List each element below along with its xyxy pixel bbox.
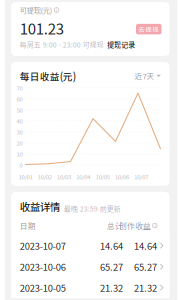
- staticText: 去提现: [138, 24, 159, 34]
- staticText: 50: [16, 106, 22, 114]
- staticText: 每周五 9:00 - 23:00 可提现: [20, 39, 104, 49]
- staticText: 14.64: [100, 239, 123, 252]
- button[interactable]: 去提现: [136, 24, 161, 34]
- button[interactable]: 2023-10-06: [11, 256, 169, 277]
- staticText: 日期: [20, 220, 36, 231]
- staticText: 2023-10-06: [20, 260, 66, 273]
- staticText: i: [56, 6, 57, 14]
- button[interactable]: 2023-10-07: [11, 235, 169, 256]
- staticText: 10/04: [76, 172, 90, 181]
- staticText: 创作收益: [119, 220, 151, 231]
- staticText: 65.27: [100, 260, 123, 273]
- staticText: 65.27: [134, 260, 157, 273]
- staticText: 14.64: [134, 239, 157, 252]
- staticText: 101.23: [20, 17, 64, 39]
- staticText: 总计: [107, 220, 123, 231]
- staticText: 提现记录: [107, 39, 135, 49]
- staticText: 10/05: [96, 172, 110, 181]
- staticText: 10/03: [57, 172, 71, 181]
- staticText: 2023-10-07: [20, 239, 66, 252]
- button[interactable]: 近7天: [135, 70, 161, 82]
- staticText: 2023-10-05: [20, 281, 66, 294]
- button[interactable]: 2023-10-05: [11, 277, 169, 298]
- staticText: i: [154, 222, 155, 229]
- staticText: 10/07: [134, 172, 148, 181]
- staticText: 30: [16, 128, 22, 136]
- staticText: 每日收益(元): [20, 69, 76, 83]
- staticText: 可提现(元): [20, 5, 52, 15]
- staticText: 21.32: [134, 281, 157, 294]
- staticText: 10/06: [115, 172, 129, 181]
- button[interactable]: 提现记录: [107, 39, 135, 49]
- staticText: 收益详情: [20, 199, 60, 214]
- staticText: 10/02: [38, 172, 52, 181]
- staticText: 最晚 23:59 前更新: [64, 203, 121, 213]
- staticText: 70: [16, 84, 22, 92]
- staticText: 10/01: [18, 172, 32, 181]
- staticText: 20: [16, 139, 22, 147]
- staticText: 21.32: [100, 281, 123, 294]
- staticText: 近7天: [135, 70, 155, 82]
- staticText: 10: [16, 150, 22, 158]
- staticText: 0: [19, 161, 22, 169]
- staticText: 40: [16, 117, 22, 125]
- staticText: 60: [16, 95, 22, 103]
